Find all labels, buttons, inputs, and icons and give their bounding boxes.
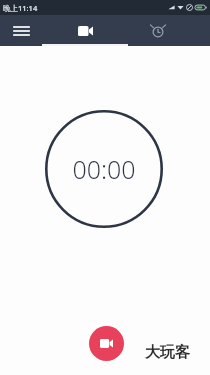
staticText: 大玩客: [145, 343, 190, 362]
button[interactable]: Video recorder: [42, 15, 128, 46]
staticText: 晚上11:14: [3, 3, 38, 13]
staticText: 00:00: [72, 152, 136, 186]
button[interactable]: Alarm: [128, 15, 210, 46]
button[interactable]: Start recording: [89, 326, 124, 361]
button[interactable]: Menu: [0, 15, 42, 46]
